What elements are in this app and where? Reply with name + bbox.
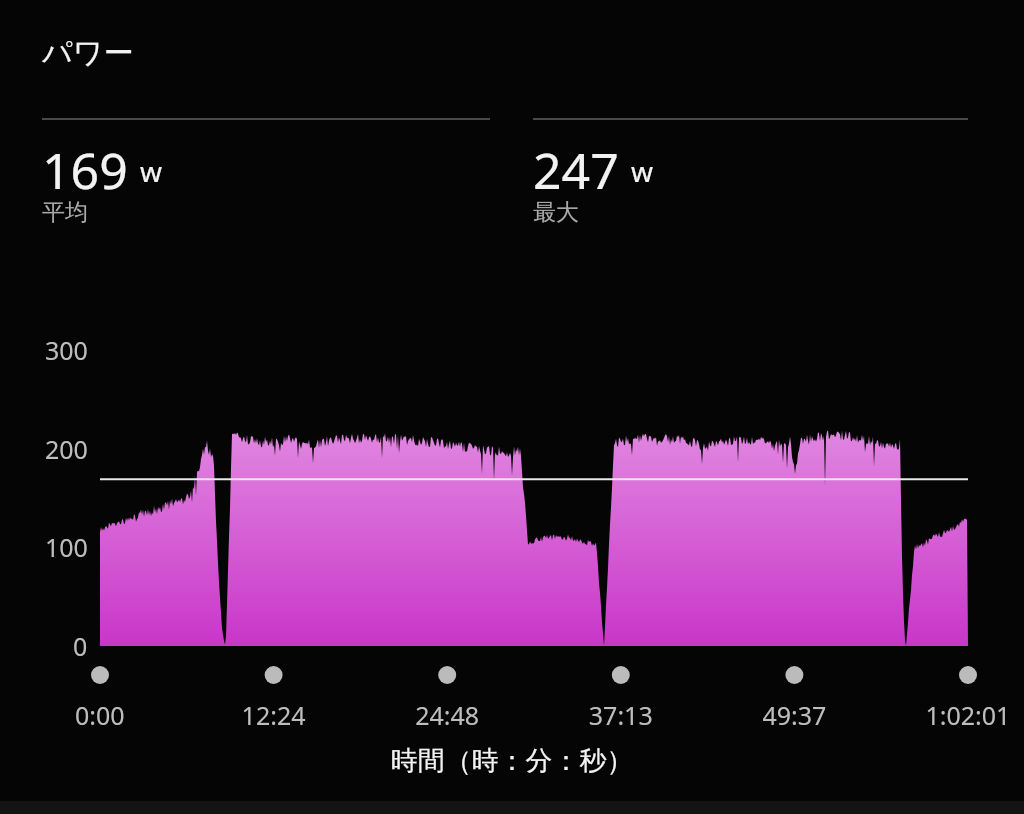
button[interactable]: パワー グラフ <box>0 0 1024 814</box>
